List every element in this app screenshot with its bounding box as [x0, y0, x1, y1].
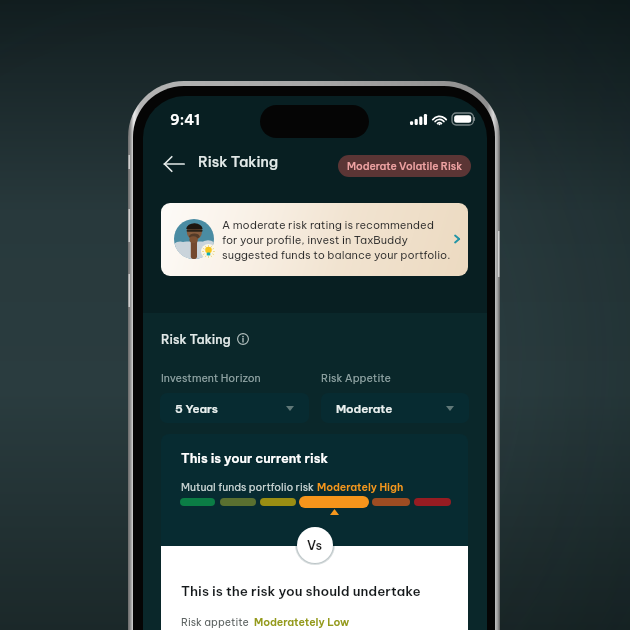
staticText: Risk Taking — [161, 331, 231, 347]
staticText: suggested funds to balance your portfoli… — [222, 248, 451, 262]
staticText: Investment Horizon — [161, 371, 261, 385]
button[interactable]: Information — [237, 333, 249, 345]
staticText: Mutual funds portfolio risk — [181, 480, 317, 493]
staticText: Risk appetite — [181, 615, 254, 628]
button[interactable]: Back — [163, 154, 185, 174]
button[interactable]: Vs — [297, 527, 333, 563]
staticText: Risk Appetite — [321, 371, 391, 385]
staticText: Moderatetely Low — [254, 615, 350, 628]
staticText: This is the risk you should undertake — [181, 583, 421, 600]
button[interactable]: Moderate Volatile Risk — [338, 155, 471, 177]
staticText: 5 Years — [175, 401, 218, 416]
staticText: Risk Taking — [198, 153, 279, 171]
button[interactable]: Moderate — [321, 393, 469, 423]
button[interactable]: A moderate risk rating is recommended — [161, 203, 468, 276]
staticText: Vs — [307, 537, 323, 553]
staticText: Moderate — [336, 401, 393, 416]
staticText: A moderate risk rating is recommended — [222, 218, 434, 232]
staticText: Moderately High — [317, 480, 404, 493]
staticText: This is your current risk — [181, 450, 328, 466]
staticText: 9:41 — [170, 111, 201, 129]
staticText: for your profile, invest in TaxBuddy — [222, 233, 409, 247]
staticText: Moderate Volatile Risk — [347, 160, 463, 173]
button[interactable]: 5 Years — [160, 393, 309, 423]
